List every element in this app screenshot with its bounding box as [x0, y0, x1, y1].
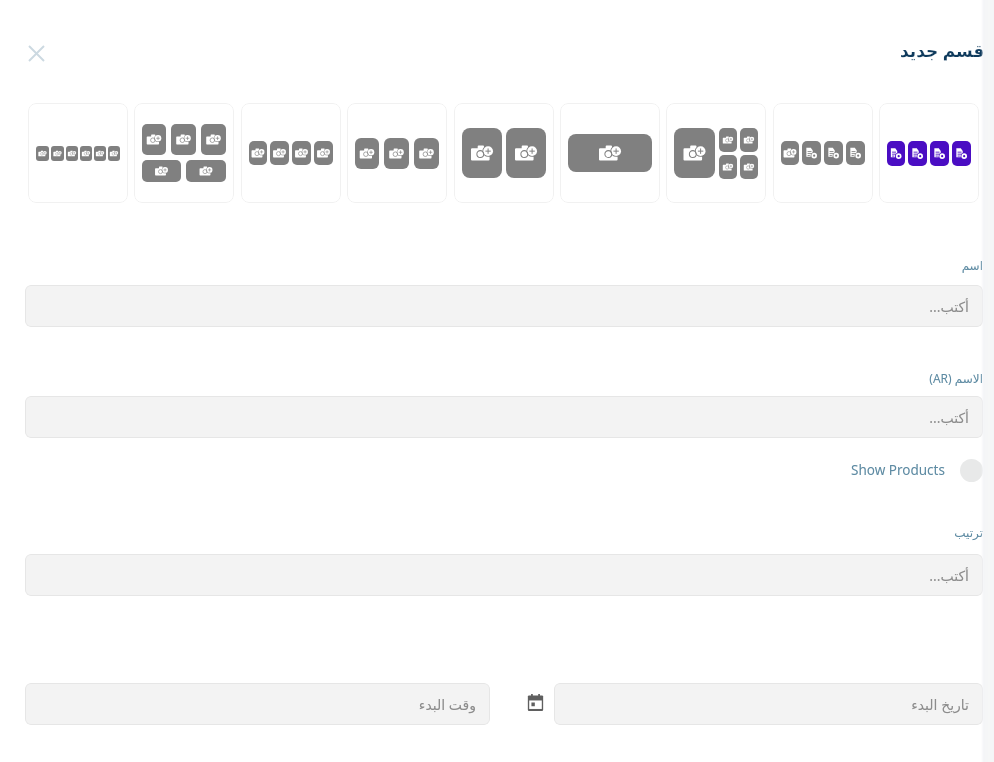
staticText: الاسم (AR) — [929, 370, 983, 386]
button[interactable]: Pick date — [523, 690, 547, 714]
button[interactable]: Layout template 1 — [28, 103, 128, 203]
button[interactable]: Layout template 7 — [666, 103, 766, 203]
staticText: وقت البدء — [418, 695, 476, 714]
staticText: أكتب... — [929, 566, 969, 585]
button[interactable]: أكتب... — [25, 285, 983, 327]
staticText: تاريخ البدء — [911, 695, 969, 714]
staticText: أكتب... — [929, 408, 969, 427]
staticText: اسم — [961, 259, 983, 273]
staticText: ترتيب — [954, 526, 983, 540]
button[interactable]: Layout template 2 — [134, 103, 234, 203]
button[interactable]: أكتب... — [25, 554, 983, 596]
button[interactable]: تاريخ البدء — [554, 683, 983, 725]
button[interactable]: Layout template 9 — [879, 103, 979, 203]
button[interactable]: Layout template 4 — [347, 103, 447, 203]
button[interactable]: Layout template 3 — [241, 103, 341, 203]
button[interactable]: وقت البدء — [25, 683, 490, 725]
button[interactable]: Layout template 6 — [560, 103, 660, 203]
button[interactable]: Layout template 8 — [773, 103, 873, 203]
staticText: أكتب... — [929, 297, 969, 316]
button[interactable]: أكتب... — [25, 396, 983, 438]
button[interactable]: Show Products — [700, 455, 983, 485]
staticText: قسم جديد — [900, 39, 985, 62]
staticText: Show Products — [851, 461, 945, 479]
button[interactable]: Layout template 5 — [454, 103, 554, 203]
button[interactable]: Close — [22, 39, 50, 67]
